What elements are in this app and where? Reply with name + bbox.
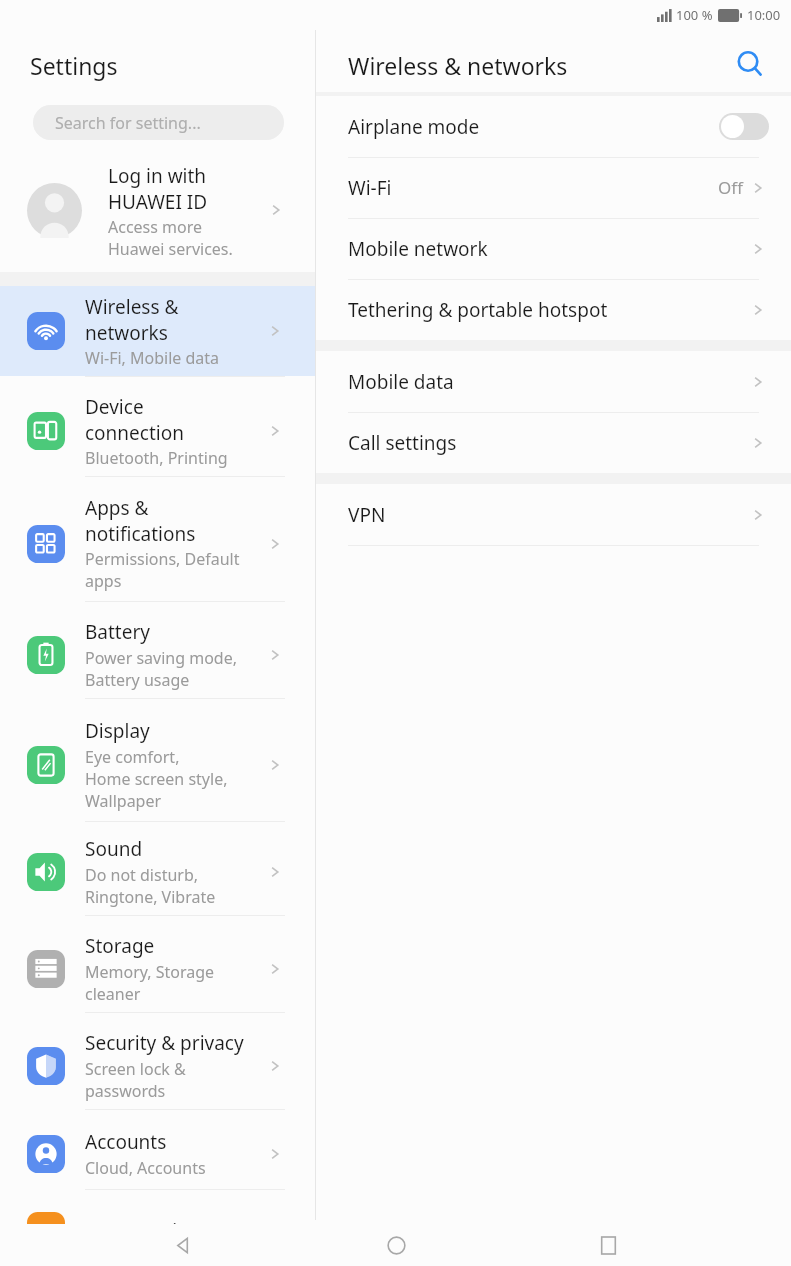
staticText: Settings	[30, 50, 118, 81]
staticText: Screen lock & passwords	[85, 1058, 186, 1102]
button[interactable]: Apps & notifications	[0, 486, 315, 601]
staticText: 100 %	[676, 6, 713, 24]
staticText: Wi-Fi	[348, 175, 392, 201]
button[interactable]: Storage	[0, 925, 315, 1012]
button[interactable]: Device connection	[0, 386, 315, 476]
staticText: Bluetooth, Printing	[85, 447, 228, 469]
staticText: Memory, Storage cleaner	[85, 961, 215, 1005]
staticText: Search for setting...	[55, 112, 201, 134]
staticText: Smart assistance	[85, 1218, 236, 1244]
staticText: Permissions, Default apps	[85, 548, 240, 592]
staticText: Device connection	[85, 394, 184, 445]
staticText: Wireless & networks	[85, 294, 179, 345]
staticText: Cloud, Accounts	[85, 1157, 206, 1179]
staticText: Tethering & portable hotspot	[348, 297, 608, 323]
button[interactable]: Security & privacy	[0, 1022, 315, 1109]
staticText: 10:00	[747, 6, 781, 24]
staticText: VPN	[348, 502, 386, 528]
button[interactable]: Sound	[0, 828, 315, 915]
button[interactable]: Back	[153, 1224, 213, 1266]
staticText: Accounts	[85, 1129, 167, 1155]
button[interactable]: Tethering & portable hotspot	[316, 279, 791, 340]
staticText: Wi-Fi, Mobile data	[85, 347, 220, 369]
staticText: Apps & notifications	[85, 495, 196, 546]
staticText: Sound	[85, 836, 143, 862]
staticText: Power saving mode, Battery usage	[85, 647, 237, 691]
staticText: Access more Huawei services.	[108, 216, 233, 260]
staticText: Storage	[85, 933, 155, 959]
staticText: Battery	[85, 619, 150, 645]
button[interactable]: Search	[726, 40, 774, 88]
button[interactable]: Airplane mode	[316, 96, 791, 157]
staticText: Log in with HUAWEI ID	[108, 163, 208, 214]
button[interactable]: Smart assistance	[0, 1196, 315, 1266]
button[interactable]: VPN	[316, 484, 791, 545]
button[interactable]: Mobile data	[316, 351, 791, 412]
button[interactable]: Mobile network	[316, 218, 791, 279]
button[interactable]: Airplane mode toggle	[719, 113, 769, 140]
button[interactable]: Search for setting...	[33, 105, 284, 140]
button[interactable]: Home	[366, 1224, 426, 1266]
staticText: Off	[718, 176, 743, 199]
button[interactable]: Wi-Fi	[316, 157, 791, 218]
button[interactable]: Recents	[578, 1224, 638, 1266]
button[interactable]: Battery	[0, 611, 315, 698]
button[interactable]: Log in with HUAWEI ID	[0, 150, 315, 272]
button[interactable]: Accounts	[0, 1119, 315, 1189]
staticText: Mobile network	[348, 236, 488, 262]
staticText: Eye comfort, Home screen style, Wallpape…	[85, 746, 228, 812]
staticText: Security & privacy	[85, 1030, 244, 1056]
staticText: Wireless & networks	[348, 50, 568, 81]
button[interactable]: Call settings	[316, 412, 791, 473]
button[interactable]: Wireless & networks	[0, 286, 315, 376]
staticText: Do not disturb, Ringtone, Vibrate	[85, 864, 216, 908]
staticText: Call settings	[348, 430, 457, 456]
staticText: Mobile data	[348, 369, 454, 395]
button[interactable]: Display	[0, 708, 315, 821]
staticText: Airplane mode	[348, 114, 480, 140]
staticText: Display	[85, 718, 150, 744]
